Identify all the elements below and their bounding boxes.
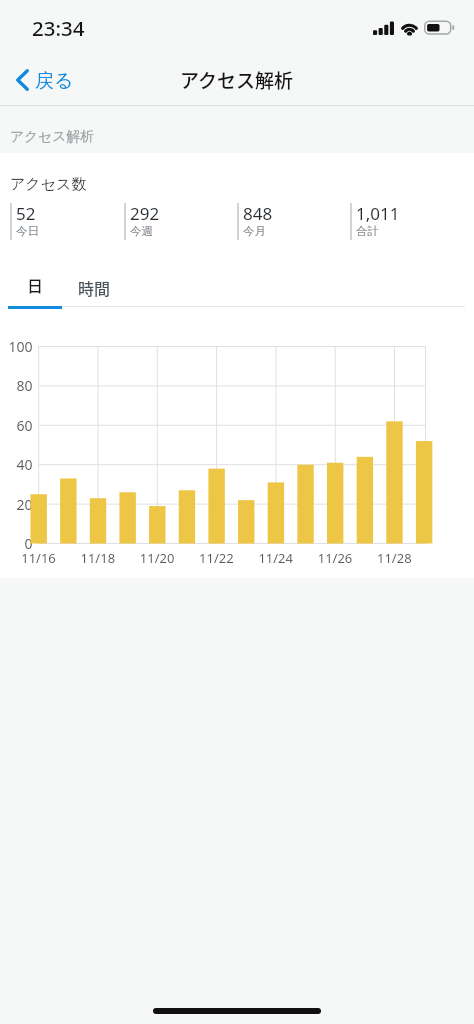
button[interactable]: Back — [0, 61, 86, 99]
other: Signal, Wi-Fi and battery status — [373, 20, 455, 35]
staticText: 今月 — [243, 224, 266, 238]
staticText: 52 — [16, 202, 36, 225]
button[interactable]: 時間 — [62, 264, 126, 305]
button[interactable]: 1,011 — [350, 203, 463, 240]
staticText: 1,011 — [356, 202, 400, 225]
staticText: 日 — [27, 273, 44, 296]
staticText: 時間 — [78, 276, 111, 299]
button[interactable]: 848 — [237, 203, 350, 240]
other: Daily access count bar chart — [0, 330, 474, 576]
staticText: 23:34 — [32, 14, 85, 42]
staticText: 今週 — [130, 224, 153, 238]
button[interactable]: 52 — [10, 203, 124, 240]
staticText: 戻る — [35, 69, 74, 93]
button[interactable]: 日 — [8, 264, 62, 305]
staticText: アクセス数 — [10, 175, 87, 194]
button[interactable]: 292 — [124, 203, 237, 240]
staticText: 292 — [130, 202, 160, 225]
staticText: 今日 — [16, 224, 39, 238]
staticText: アクセス解析 — [10, 128, 95, 145]
staticText: 848 — [243, 202, 273, 225]
staticText: 合計 — [356, 224, 379, 238]
staticText: アクセス解析 — [180, 66, 294, 94]
